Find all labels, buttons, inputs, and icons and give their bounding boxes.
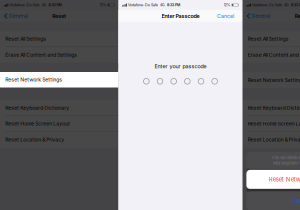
button[interactable]: Reset Keyboard Dictionary xyxy=(242,100,300,116)
button[interactable]: Reset Network Settings xyxy=(246,170,300,189)
button[interactable]: Reset Network Settings xyxy=(0,72,118,87)
staticText: Enter your passcode xyxy=(154,63,206,69)
staticText: 8:33 PM xyxy=(289,3,300,7)
staticText: 4G xyxy=(158,3,165,7)
button[interactable]: Cancel xyxy=(246,191,300,210)
staticText: Reset Network Settings xyxy=(269,176,300,183)
button[interactable]: General xyxy=(242,10,270,22)
staticText: Reset All Settings xyxy=(248,36,289,42)
button[interactable]: Erase All Content and Settings xyxy=(0,47,118,63)
staticText: Erase All Content and Settings xyxy=(248,52,300,58)
button[interactable]: Reset Location & Privacy xyxy=(0,132,118,147)
staticText: Reset Keyboard Dictionary xyxy=(248,105,300,111)
staticText: General xyxy=(251,13,270,19)
staticText: 4G xyxy=(282,3,289,7)
button[interactable]: Reset Home Screen Layout xyxy=(242,116,300,131)
button[interactable]: Erase All Content and Settings xyxy=(242,47,300,63)
staticText: Reset Keyboard Dictionary xyxy=(5,105,69,111)
staticText: returning them to factory defaults. xyxy=(273,161,300,166)
button[interactable]: Cancel xyxy=(217,10,242,22)
staticText: Reset Home Screen Layout xyxy=(5,121,70,127)
staticText: This will delete all network settings, xyxy=(271,155,300,160)
staticText: Reset Network Settings xyxy=(5,77,62,83)
button[interactable]: General xyxy=(0,10,28,22)
staticText: Cancel xyxy=(217,13,234,19)
button[interactable]: Reset Keyboard Dictionary xyxy=(0,100,118,116)
staticText: 8:33 PM xyxy=(165,3,180,7)
button[interactable]: Reset All Settings xyxy=(242,31,300,47)
button[interactable]: Reset All Settings xyxy=(0,31,118,47)
staticText: Reset All Settings xyxy=(5,36,46,42)
button[interactable]: Reset Location & Privacy xyxy=(242,132,300,147)
staticText: Reset Home Screen Layout xyxy=(248,121,300,127)
button[interactable]: Reset Home Screen Layout xyxy=(0,116,118,131)
staticText: 12% xyxy=(100,3,108,7)
staticText: Reset xyxy=(295,13,300,19)
staticText: Cancel xyxy=(292,197,300,204)
button[interactable]: Reset Network Settings xyxy=(0,72,118,88)
staticText: Erase All Content and Settings xyxy=(5,52,77,58)
staticText: Enter Passcode xyxy=(161,13,199,19)
button[interactable]: Reset Network Settings xyxy=(242,72,300,88)
staticText: General xyxy=(9,13,28,19)
staticText: Reset xyxy=(52,13,66,19)
staticText: Reset Network Settings xyxy=(5,77,62,83)
staticText: 12% xyxy=(224,3,232,7)
staticText: 4G xyxy=(40,3,47,7)
staticText: Vodafone-De Safe xyxy=(251,3,282,7)
staticText: Reset Location & Privacy xyxy=(5,137,64,143)
staticText: Vodafone-De Safe xyxy=(127,3,158,7)
staticText: 8:33 PM xyxy=(47,3,62,7)
staticText: Vodafone-De Safe xyxy=(9,3,40,7)
staticText: Reset Network Settings xyxy=(248,77,300,83)
staticText: Reset Location & Privacy xyxy=(248,137,300,143)
